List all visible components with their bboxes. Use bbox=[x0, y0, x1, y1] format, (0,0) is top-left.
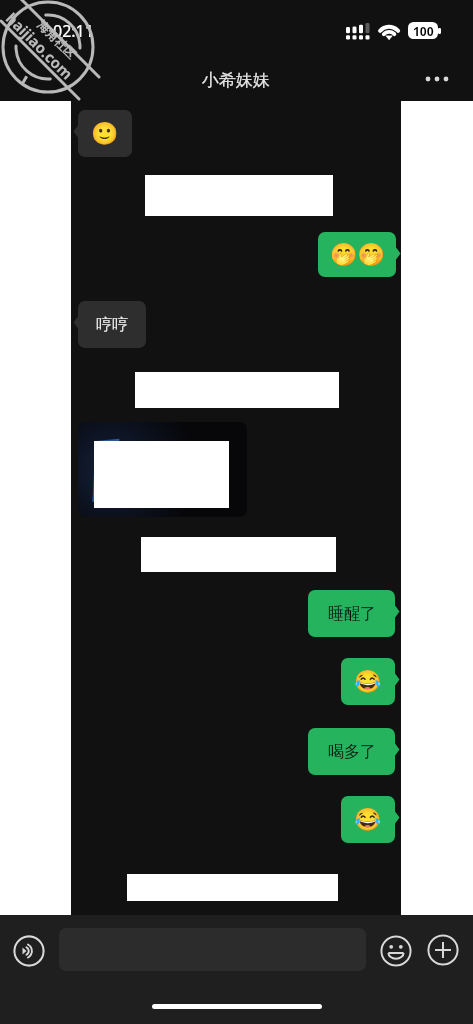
staticText: 哼哼 bbox=[96, 315, 128, 335]
button[interactable]: 哼哼 bbox=[78, 301, 146, 348]
staticText: 😂 bbox=[354, 807, 382, 833]
staticText: 100 bbox=[413, 23, 434, 39]
staticText: 😂 bbox=[354, 669, 382, 695]
button[interactable]: 🤭🤭 bbox=[318, 232, 396, 277]
button[interactable]: 😂 bbox=[341, 796, 395, 843]
staticText: 🤭🤭 bbox=[330, 242, 385, 268]
button[interactable]: 睡醒了 bbox=[308, 590, 395, 637]
button[interactable]: Voice input bbox=[13, 935, 45, 967]
button[interactable]: 😂 bbox=[341, 658, 395, 705]
button[interactable]: 🙂 bbox=[78, 110, 132, 157]
button[interactable]: 喝多了 bbox=[308, 728, 395, 775]
button[interactable]: Add attachment bbox=[427, 934, 459, 966]
staticText: 小希妹妹 bbox=[202, 70, 270, 91]
button[interactable]: Photo bbox=[78, 422, 247, 517]
button[interactable]: More options bbox=[417, 59, 457, 99]
staticText: 🙂 bbox=[91, 121, 119, 147]
staticText: 喝多了 bbox=[328, 742, 376, 762]
staticText: 海角社区 bbox=[35, 17, 79, 62]
button[interactable]: Emoji bbox=[380, 935, 412, 967]
staticText: haijiao.com bbox=[2, 8, 78, 84]
staticText: 02:11 bbox=[53, 20, 94, 42]
staticText: 睡醒了 bbox=[328, 604, 376, 624]
